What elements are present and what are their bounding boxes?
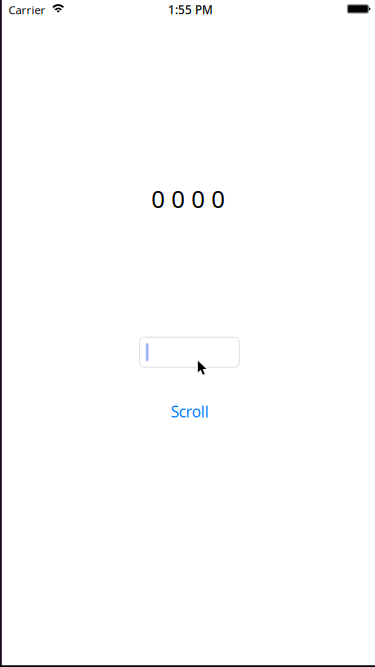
staticText: 0 0 0 0 [151, 182, 225, 215]
staticText: Carrier [8, 2, 45, 18]
textField[interactable] [139, 342, 239, 363]
staticText: 1:55 PM [168, 2, 213, 18]
button[interactable]: Text field [139, 337, 239, 367]
staticText: Scroll [171, 401, 209, 422]
button[interactable]: Scroll [171, 401, 209, 422]
